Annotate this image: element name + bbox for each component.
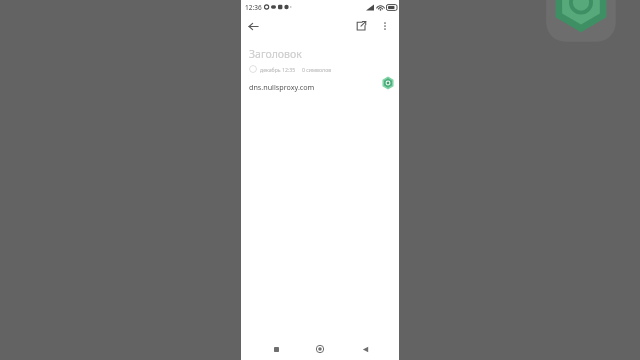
staticText: 0 символов <box>302 66 332 73</box>
staticText: декабрь 12:35 <box>260 66 296 73</box>
staticText: Заголовок <box>249 47 302 61</box>
staticText: dns.nullsproxy.com <box>249 82 315 92</box>
button[interactable]: Recent apps <box>266 339 286 359</box>
staticText: 12:36 <box>245 3 262 12</box>
button[interactable]: Secure connection badge <box>381 76 395 90</box>
button[interactable]: Back <box>355 339 375 359</box>
button[interactable]: Back <box>241 14 265 38</box>
button[interactable]: Share <box>349 14 373 38</box>
button[interactable]: More options <box>373 14 397 38</box>
button[interactable]: Home <box>310 339 330 359</box>
